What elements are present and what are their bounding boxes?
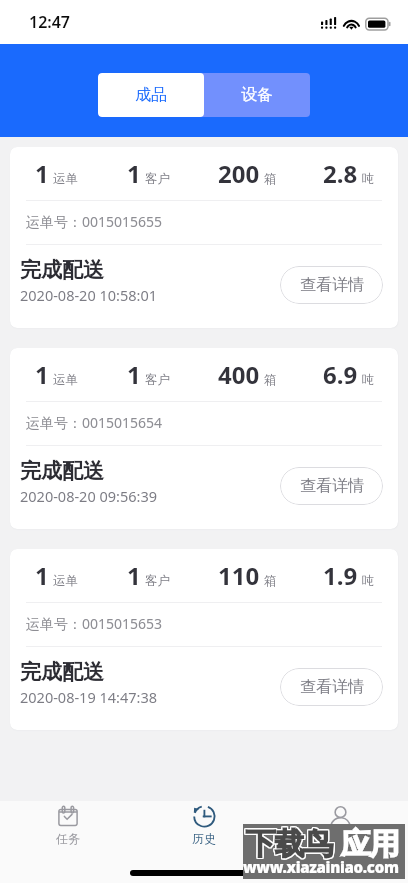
staticText: 吨 — [362, 573, 375, 589]
staticText: 下载鸟 — [247, 826, 334, 864]
staticText: 应用 — [341, 825, 399, 863]
staticText: 成品 — [135, 85, 167, 105]
staticText: 1 — [127, 157, 141, 190]
staticText: 运单号：0015015655 — [26, 212, 163, 231]
button[interactable]: 任务 — [0, 801, 136, 849]
staticText: 下载鸟 — [246, 825, 333, 863]
staticText: 设备 — [241, 85, 273, 105]
staticText: 12:47 — [29, 11, 71, 33]
staticText: 下载鸟 — [245, 824, 332, 862]
staticText: 运单 — [53, 573, 78, 589]
staticText: 运单 — [53, 372, 78, 388]
staticText: 6.9 — [323, 358, 358, 391]
staticText: 运单 — [53, 171, 78, 187]
staticText: 1.9 — [323, 559, 358, 592]
button[interactable]: 成品 — [98, 73, 204, 117]
button[interactable]: 1 — [10, 348, 398, 529]
staticText: 1 — [35, 358, 49, 391]
staticText: 任务 — [56, 831, 80, 846]
staticText: 查看详情 — [300, 476, 364, 496]
button[interactable]: 查看详情 — [280, 467, 383, 505]
staticText: 完成配送 — [20, 458, 104, 484]
staticText: 2020-08-20 09:56:39 — [20, 486, 157, 506]
staticText: 1 — [127, 559, 141, 592]
staticText: 400 — [218, 358, 260, 391]
staticText: 查看详情 — [300, 677, 364, 697]
staticText: 查看详情 — [300, 275, 364, 295]
staticText: 客户 — [145, 573, 170, 589]
staticText: 下载鸟 — [246, 824, 333, 862]
staticText: 箱 — [264, 372, 277, 388]
staticText: 吨 — [362, 171, 375, 187]
staticText: 1 — [35, 559, 49, 592]
button[interactable]: 历史 — [136, 801, 272, 849]
staticText: 客户 — [145, 171, 170, 187]
staticText: 2020-08-20 10:58:01 — [20, 285, 157, 305]
button[interactable]: 查看详情 — [280, 668, 383, 706]
button[interactable]: 我的 — [272, 801, 408, 849]
button[interactable]: 1 — [10, 549, 398, 730]
staticText: 下载鸟 — [247, 825, 334, 863]
button[interactable]: 1 — [10, 147, 398, 328]
staticText: 2.8 — [323, 157, 358, 190]
button[interactable]: 查看详情 — [280, 266, 383, 304]
staticText: www.xiazainiao.com — [243, 857, 399, 877]
staticText: 客户 — [145, 372, 170, 388]
staticText: 下载鸟 — [246, 826, 333, 864]
staticText: 吨 — [362, 372, 375, 388]
staticText: 运单号：0015015654 — [26, 413, 163, 432]
staticText: 箱 — [264, 573, 277, 589]
staticText: 下载鸟 — [245, 826, 332, 864]
staticText: 历史 — [192, 831, 216, 846]
staticText: 完成配送 — [20, 257, 104, 283]
staticText: 1 — [35, 157, 49, 190]
staticText: 1 — [127, 358, 141, 391]
staticText: 我的 — [328, 831, 352, 846]
staticText: 200 — [218, 157, 260, 190]
staticText: 下载鸟 — [245, 825, 332, 863]
staticText: 2020-08-19 14:47:38 — [20, 687, 157, 707]
staticText: 下载鸟 — [247, 824, 334, 862]
staticText: 完成配送 — [20, 659, 104, 685]
staticText: 110 — [218, 559, 260, 592]
button[interactable]: 设备 — [204, 73, 310, 117]
staticText: 箱 — [264, 171, 277, 187]
staticText: 运单号：0015015653 — [26, 614, 163, 633]
